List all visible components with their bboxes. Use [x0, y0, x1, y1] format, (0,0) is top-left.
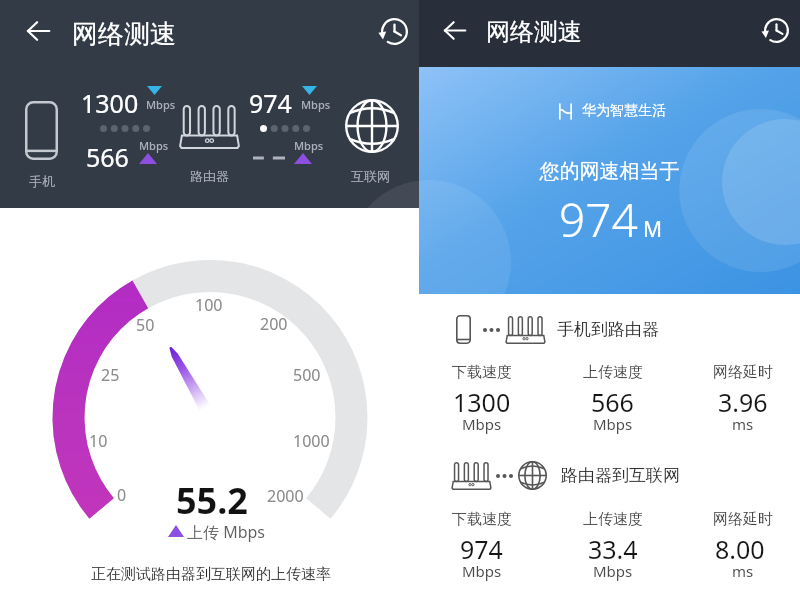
staticText: 网络测速: [72, 18, 176, 51]
staticText: 手机: [29, 173, 55, 189]
staticText: 华为智慧生活: [582, 102, 666, 120]
staticText: 974: [460, 532, 503, 566]
staticText: Mbps: [146, 97, 176, 112]
staticText: 566: [86, 140, 129, 174]
staticText: 1000: [293, 430, 330, 452]
staticText: 手机到路由器: [557, 319, 659, 340]
staticText: Mbps: [593, 414, 633, 434]
staticText: 8.00: [715, 532, 765, 566]
staticText: M: [643, 215, 663, 244]
staticText: 2000: [267, 485, 304, 507]
button[interactable]: History: [374, 11, 414, 51]
staticText: Mbps: [593, 561, 633, 581]
staticText: 路由器到互联网: [561, 465, 680, 486]
button[interactable]: History: [756, 10, 796, 50]
staticText: 网络延时: [713, 510, 773, 529]
staticText: 1300: [453, 385, 511, 419]
staticText: Mbps: [462, 414, 502, 434]
staticText: 566: [591, 385, 634, 419]
staticText: 正在测试路由器到互联网的上传速率: [91, 565, 331, 584]
staticText: 您的网速相当于: [419, 159, 800, 184]
staticText: ms: [732, 414, 754, 434]
staticText: 25: [101, 364, 120, 386]
staticText: 50: [136, 314, 155, 336]
button[interactable]: Back: [18, 11, 58, 51]
staticText: Mbps: [139, 138, 169, 153]
staticText: 100: [195, 294, 223, 316]
staticText: 上传速度: [583, 363, 643, 382]
staticText: 网络测速: [486, 17, 582, 47]
staticText: 网络延时: [713, 363, 773, 382]
staticText: 3.96: [718, 385, 768, 419]
staticText: 0: [117, 484, 127, 506]
staticText: 33.4: [588, 532, 638, 566]
staticText: Mbps: [301, 97, 331, 112]
staticText: 974: [559, 188, 638, 251]
staticText: 路由器: [190, 168, 229, 184]
staticText: 974: [249, 86, 292, 120]
button[interactable]: Back: [435, 10, 475, 50]
staticText: 500: [293, 364, 321, 386]
staticText: 上传速度: [583, 510, 643, 529]
staticText: ms: [732, 561, 754, 581]
staticText: 1300: [81, 86, 139, 120]
staticText: 下载速度: [452, 510, 512, 529]
staticText: 200: [260, 313, 288, 335]
staticText: 上传 Mbps: [187, 521, 266, 543]
staticText: 55.2: [176, 476, 248, 525]
staticText: 10: [89, 430, 108, 452]
staticText: 下载速度: [452, 363, 512, 382]
staticText: Mbps: [294, 138, 324, 153]
staticText: Mbps: [462, 561, 502, 581]
staticText: 互联网: [351, 168, 390, 184]
